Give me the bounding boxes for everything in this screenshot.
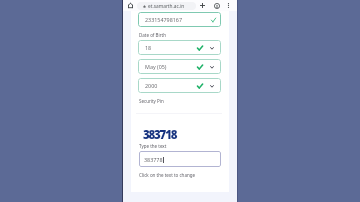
staticText: Security Pin	[139, 98, 164, 104]
button[interactable]: 18	[138, 40, 221, 55]
button[interactable]: More options	[224, 1, 233, 10]
staticText: 18	[145, 44, 152, 51]
button[interactable]: Account	[212, 1, 221, 10]
staticText: Type the text	[139, 143, 167, 149]
button[interactable]: 233154798167	[138, 12, 221, 27]
staticText: Click on the text to change	[139, 172, 196, 178]
button[interactable]: May (05)	[138, 59, 221, 74]
button[interactable]: New tab	[198, 1, 207, 10]
button[interactable]: 383778	[139, 151, 221, 167]
staticText: 383718	[143, 127, 177, 143]
button[interactable]: et.samarth.ac.in	[137, 2, 196, 10]
staticText: 2000	[145, 82, 158, 89]
staticText: Date of Birth	[139, 32, 166, 38]
staticText: et.samarth.ac.in	[148, 3, 185, 10]
staticText: 233154798167	[145, 16, 183, 23]
staticText: May (05)	[145, 63, 167, 70]
button[interactable]: 2000	[138, 78, 221, 93]
staticText: 383778	[144, 156, 163, 163]
button[interactable]: Home	[126, 1, 135, 10]
